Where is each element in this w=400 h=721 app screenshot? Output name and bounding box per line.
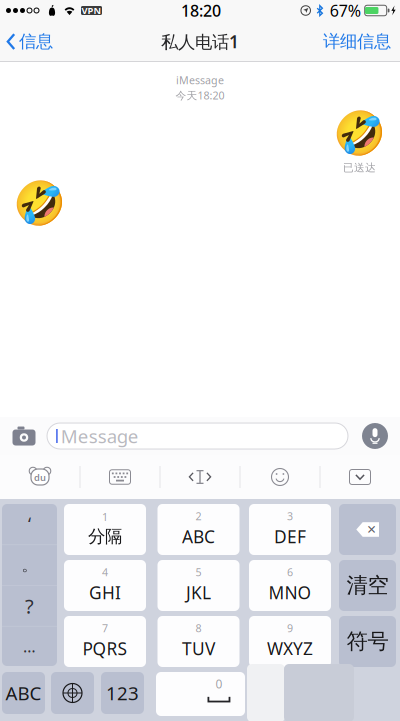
- staticText: ʻ: [28, 513, 31, 536]
- staticText: DEF: [274, 525, 306, 548]
- staticText: 4: [102, 565, 108, 579]
- staticText: 。: [21, 555, 37, 575]
- staticText: 2: [195, 509, 201, 523]
- button[interactable]: ?: [2, 586, 57, 626]
- button[interactable]: Input method: [0, 455, 80, 499]
- staticText: 6: [287, 565, 293, 579]
- button[interactable]: Keyboard layout: [80, 455, 160, 499]
- button[interactable]: 2: [157, 504, 239, 555]
- staticText: 5: [195, 565, 201, 579]
- staticText: 18:20: [181, 0, 221, 21]
- button[interactable]: 8: [157, 616, 239, 667]
- button[interactable]: 信息: [0, 24, 61, 58]
- staticText: 详细信息: [323, 31, 391, 52]
- staticText: ✕: [366, 523, 376, 536]
- staticText: 9: [287, 621, 293, 635]
- button[interactable]: Switch keyboard: [51, 672, 94, 714]
- button[interactable]: Space: [156, 672, 245, 716]
- staticText: 符号: [346, 628, 388, 655]
- staticText: ?: [25, 593, 34, 619]
- button[interactable]: 清空: [339, 560, 396, 611]
- staticText: 信息: [19, 31, 53, 52]
- staticText: 🤣: [13, 179, 66, 228]
- button[interactable]: ABC: [2, 672, 45, 714]
- staticText: 今天18:20: [175, 88, 224, 102]
- button[interactable]: Dictation: [361, 422, 400, 450]
- button[interactable]: 6: [249, 560, 331, 611]
- staticText: MNO: [268, 581, 311, 604]
- button[interactable]: Camera: [0, 426, 36, 446]
- staticText: VPN: [81, 4, 101, 17]
- button[interactable]: Emoji: [240, 455, 320, 499]
- button[interactable]: 9: [249, 616, 331, 667]
- button[interactable]: 123: [101, 672, 144, 714]
- staticText: 123: [106, 681, 139, 705]
- button[interactable]: ʻ: [2, 504, 57, 544]
- button[interactable]: Delete: [339, 504, 396, 555]
- button[interactable]: Message: [36, 423, 348, 449]
- staticText: 8: [195, 621, 201, 635]
- button[interactable]: 符号: [339, 616, 396, 667]
- button[interactable]: 3: [249, 504, 331, 555]
- button[interactable]: 。: [2, 545, 57, 585]
- staticText: 私人电话1: [161, 30, 239, 53]
- staticText: ABC: [182, 525, 215, 548]
- staticText: 分隔: [88, 526, 122, 547]
- staticText: 清空: [346, 572, 388, 599]
- button[interactable]: …: [2, 627, 57, 666]
- staticText: JKL: [186, 581, 211, 604]
- button[interactable]: 7: [64, 616, 146, 667]
- button[interactable]: Move cursor: [160, 455, 240, 499]
- staticText: 1: [102, 510, 108, 524]
- staticText: GHI: [89, 581, 121, 604]
- staticText: 🤣: [333, 109, 386, 158]
- staticText: 3: [287, 509, 293, 523]
- staticText: WXYZ: [267, 637, 313, 660]
- staticText: TUV: [182, 637, 215, 660]
- staticText: 67%: [330, 0, 361, 21]
- button[interactable]: Hide keyboard: [320, 455, 400, 499]
- staticText: iMessage: [176, 73, 224, 87]
- button[interactable]: 1: [64, 504, 146, 555]
- staticText: 已送达: [343, 161, 376, 174]
- staticText: 0: [215, 676, 222, 692]
- staticText: …: [23, 636, 36, 657]
- button[interactable]: 5: [157, 560, 239, 611]
- staticText: Message: [61, 424, 139, 448]
- staticText: ABC: [5, 681, 41, 705]
- staticText: 7: [102, 621, 108, 635]
- button[interactable]: 4: [64, 560, 146, 611]
- staticText: PQRS: [82, 637, 127, 660]
- staticText: du: [34, 471, 46, 484]
- button[interactable]: 详细信息: [315, 24, 400, 58]
